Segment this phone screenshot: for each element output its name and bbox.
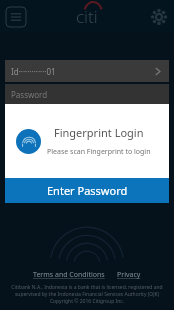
staticText: Please scan Fingerprint to login [47,147,151,157]
button[interactable]: Enter Password [5,178,169,203]
staticText: Privacy [117,270,141,280]
staticText: Terms and Conditions [33,270,105,280]
staticText: Fingerprint Login [54,125,144,140]
staticText: Enter Password [47,183,128,198]
staticText: Citibank N.A., Indonesia is a bank that … [6,284,168,298]
button[interactable]: Password [5,84,169,104]
button[interactable]: Privacy [117,270,141,280]
staticText: Id·············01 [11,66,56,77]
button[interactable]: Settings [148,6,170,28]
staticText: citi [76,5,98,28]
staticText: Copyright © 2016 Citigroup Inc. [0,298,174,305]
staticText: Password [11,89,48,100]
button[interactable]: Menu [4,5,28,29]
button[interactable]: Id·············01 [5,60,169,82]
button[interactable]: Terms and Conditions [33,270,105,280]
